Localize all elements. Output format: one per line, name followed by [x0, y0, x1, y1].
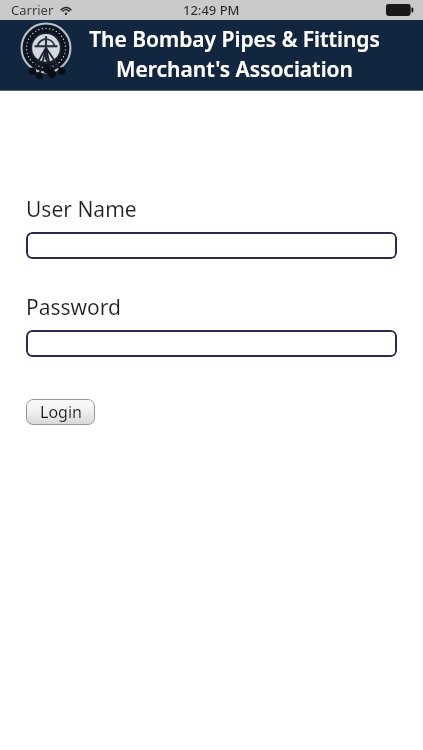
staticText: 12:49 PM: [183, 1, 240, 19]
button[interactable]: User Name field: [26, 232, 397, 259]
staticText: Password: [26, 293, 121, 322]
button[interactable]: Password field: [26, 330, 397, 357]
other: Association logo: [20, 21, 72, 87]
staticText: The Bombay Pipes & Fittings: [89, 25, 380, 54]
button[interactable]: Login: [26, 399, 95, 425]
staticText: User Name: [26, 195, 137, 224]
staticText: Login: [40, 401, 82, 423]
staticText: Carrier: [11, 1, 54, 19]
staticText: Merchant's Association: [116, 55, 353, 84]
